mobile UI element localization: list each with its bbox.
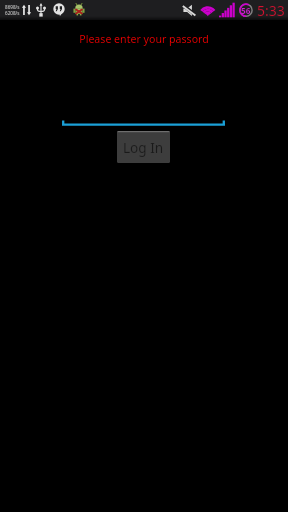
staticText: 5:33 xyxy=(257,1,285,20)
staticText: 56 xyxy=(241,5,251,16)
button[interactable]: Log In xyxy=(117,131,170,163)
staticText: 8698/s xyxy=(5,4,20,10)
button[interactable]: Password field xyxy=(62,100,225,126)
staticText: Log In xyxy=(123,138,164,157)
staticText: 6208/s xyxy=(5,10,20,16)
staticText: Please enter your passord xyxy=(0,32,288,46)
